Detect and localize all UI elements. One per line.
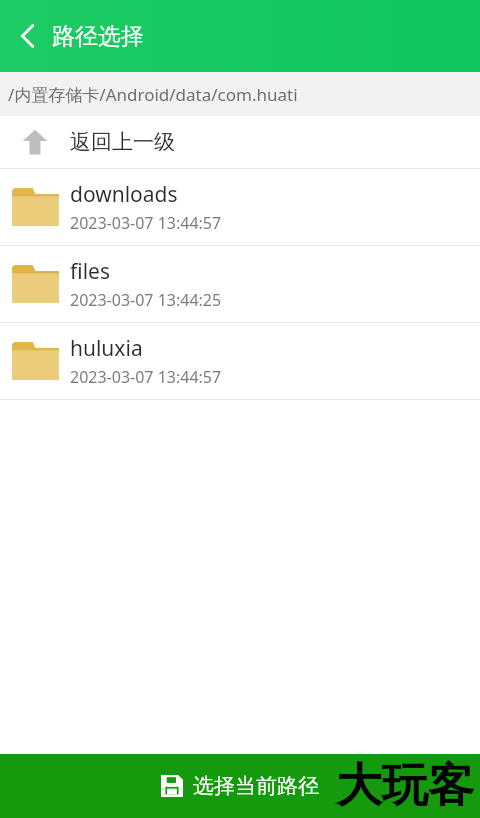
- staticText: huluxia: [70, 334, 143, 363]
- other: Back: [18, 23, 38, 49]
- staticText: 2023-03-07 13:44:57: [70, 212, 222, 234]
- button[interactable]: /内置存储卡/Android/data/com.huati: [0, 72, 480, 116]
- staticText: /内置存储卡/Android/data/com.huati: [8, 83, 298, 106]
- staticText: files: [70, 257, 110, 286]
- staticText: 大玩客: [336, 757, 474, 815]
- button[interactable]: huluxia: [0, 323, 480, 399]
- button[interactable]: 返回上一级: [0, 116, 480, 168]
- staticText: 返回上一级: [70, 129, 175, 155]
- staticText: 2023-03-07 13:44:25: [70, 289, 222, 311]
- button[interactable]: 选择当前路径: [0, 754, 480, 818]
- staticText: 选择当前路径: [193, 773, 319, 799]
- button[interactable]: downloads: [0, 169, 480, 245]
- button[interactable]: Back: [0, 0, 158, 72]
- button[interactable]: files: [0, 246, 480, 322]
- staticText: 路径选择: [52, 22, 144, 51]
- staticText: 2023-03-07 13:44:57: [70, 366, 222, 388]
- staticText: downloads: [70, 180, 178, 209]
